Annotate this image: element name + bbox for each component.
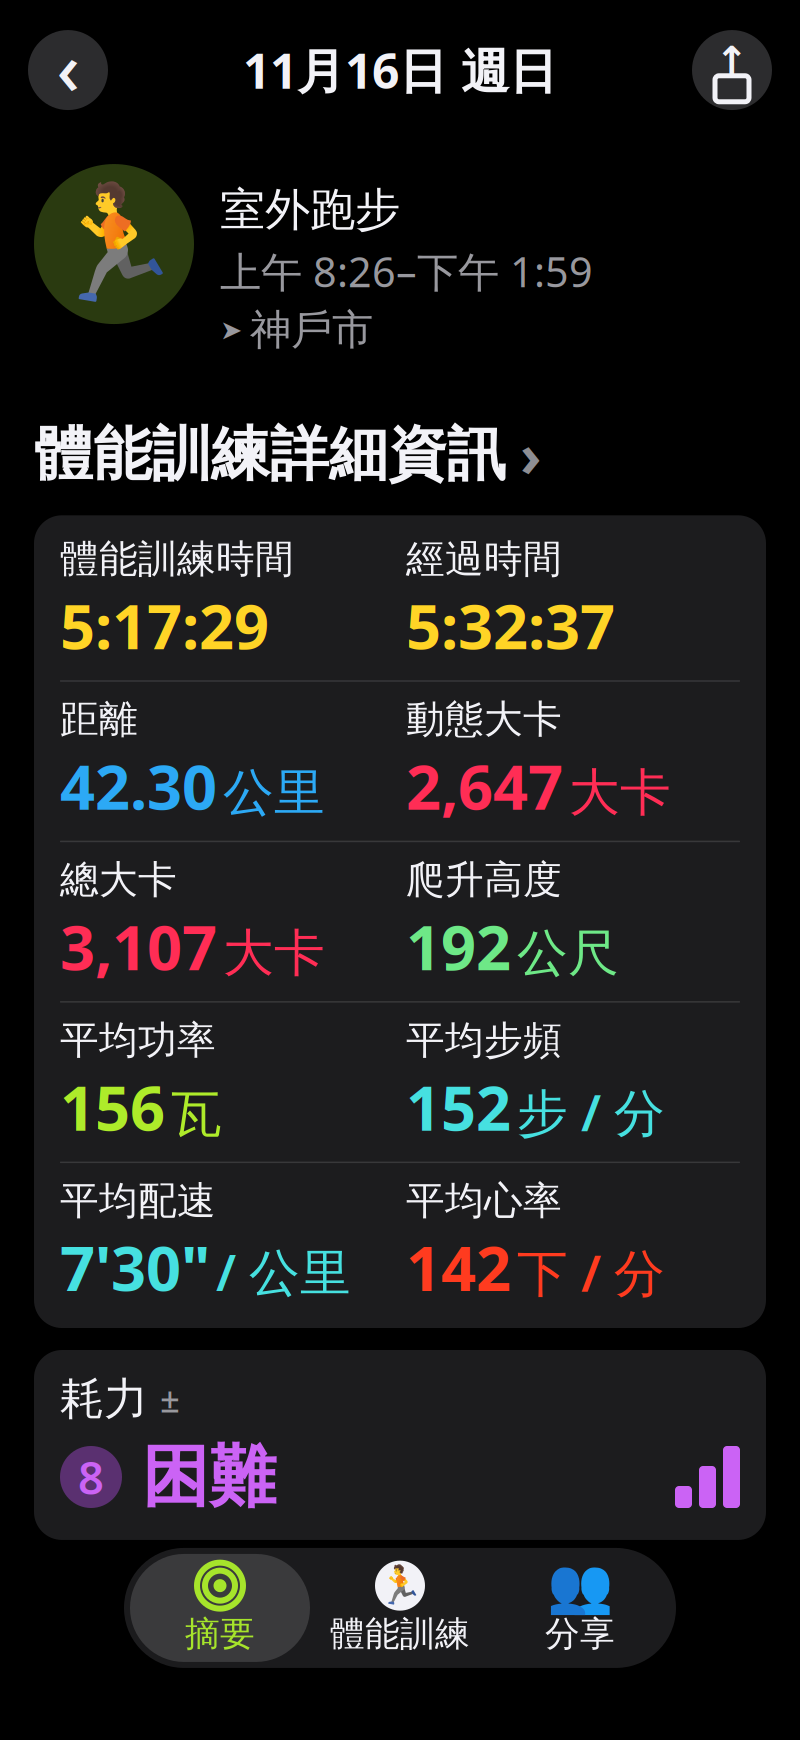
button[interactable]: 體能訓練詳細資訊 xyxy=(0,415,800,493)
staticText: 總大卡 xyxy=(60,856,177,904)
staticText: 156 xyxy=(60,1066,165,1147)
staticText: 經過時間 xyxy=(406,535,562,583)
staticText: / 公里 xyxy=(216,1238,351,1305)
staticText: 困難 xyxy=(142,1436,276,1518)
staticText: 公里 xyxy=(223,762,325,824)
staticText: 距離 xyxy=(60,696,138,743)
staticText: 11月16日 週日 xyxy=(243,38,557,102)
staticText: 步 / 分 xyxy=(517,1078,665,1145)
staticText: › xyxy=(520,415,541,493)
staticText: 神戶市 xyxy=(250,305,373,355)
staticText: 摘要 xyxy=(185,1613,255,1655)
staticText: 152 xyxy=(406,1066,511,1147)
staticText: 3,107 xyxy=(60,906,217,987)
staticText: 下 / 分 xyxy=(517,1238,665,1306)
staticText: 平均配速 xyxy=(60,1177,216,1225)
staticText: 平均功率 xyxy=(60,1017,216,1064)
button[interactable]: 👥 xyxy=(490,1554,670,1662)
staticText: ➤ xyxy=(220,315,242,345)
staticText: 5:32:37 xyxy=(406,585,615,666)
staticText: ± xyxy=(160,1376,180,1422)
staticText: 5:17:29 xyxy=(60,585,269,666)
staticText: 2,647 xyxy=(406,745,563,827)
staticText: 公尺 xyxy=(517,922,619,984)
button[interactable]: 🏃 xyxy=(310,1554,490,1662)
button[interactable]: Back xyxy=(28,30,108,110)
staticText: 體能訓練時間 xyxy=(60,535,294,583)
staticText: 分享 xyxy=(545,1613,615,1655)
button[interactable]: 摘要 xyxy=(130,1554,310,1662)
staticText: 體能訓練詳細資訊 xyxy=(34,418,506,490)
staticText: ‹ xyxy=(56,19,79,115)
staticText: 👥 xyxy=(547,1555,613,1616)
staticText: 大卡 xyxy=(223,922,325,984)
staticText: 42.30 xyxy=(60,745,217,827)
staticText: 上午 8:26–下午 1:59 xyxy=(220,244,593,299)
staticText: 耗力 xyxy=(60,1372,148,1426)
staticText: 192 xyxy=(406,906,511,987)
staticText: 平均心率 xyxy=(406,1177,562,1225)
staticText: 平均步頻 xyxy=(406,1017,562,1064)
staticText: 動態大卡 xyxy=(406,696,562,743)
staticText: 大卡 xyxy=(569,762,671,824)
staticText: ↑ xyxy=(715,38,749,84)
staticText: 142 xyxy=(406,1227,511,1308)
staticText: 7'30" xyxy=(60,1227,210,1308)
button[interactable]: Share xyxy=(692,30,772,110)
staticText: 室外跑步 xyxy=(220,182,400,238)
staticText: 瓦 xyxy=(171,1083,222,1145)
staticText: 體能訓練 xyxy=(330,1613,470,1655)
staticText: 爬升高度 xyxy=(406,856,562,904)
staticText: 🏃 xyxy=(44,180,183,308)
staticText: 8 xyxy=(78,1447,104,1507)
staticText: 🏃 xyxy=(377,1564,423,1607)
